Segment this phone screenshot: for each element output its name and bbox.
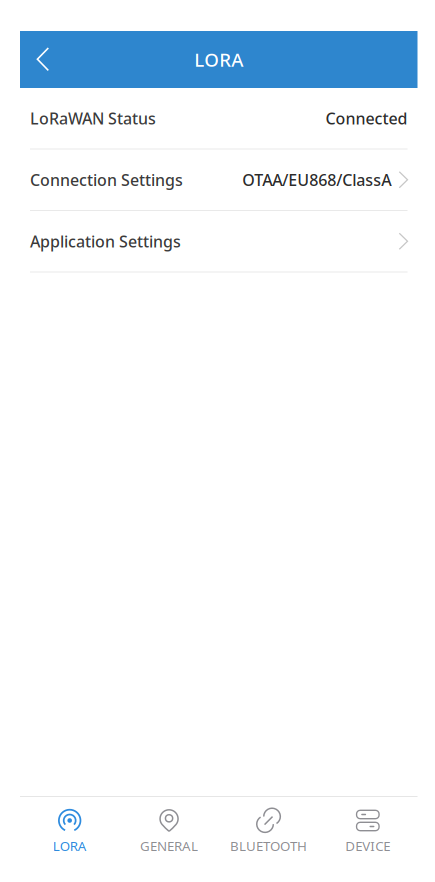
staticText: OTAA/EU868/ClassA (242, 169, 391, 190)
button[interactable]: DEVICE (318, 797, 417, 867)
button[interactable]: GENERAL (119, 797, 219, 867)
staticText: Application Settings (30, 231, 181, 252)
staticText: Connected (325, 108, 407, 129)
button[interactable]: Application Settings (30, 211, 407, 272)
button[interactable]: LoRaWAN Status (30, 88, 407, 149)
staticText: GENERAL (140, 837, 198, 855)
button[interactable]: LORA (20, 797, 119, 867)
staticText: LoRaWAN Status (30, 108, 156, 129)
staticText: LORA (194, 47, 243, 72)
button[interactable]: Connection Settings (30, 149, 407, 211)
button[interactable]: BLUETOOTH (219, 797, 318, 867)
staticText: Connection Settings (30, 169, 183, 190)
button[interactable]: Back (20, 31, 66, 88)
staticText: LORA (53, 837, 87, 855)
staticText: BLUETOOTH (230, 837, 307, 855)
staticText: DEVICE (345, 837, 390, 855)
